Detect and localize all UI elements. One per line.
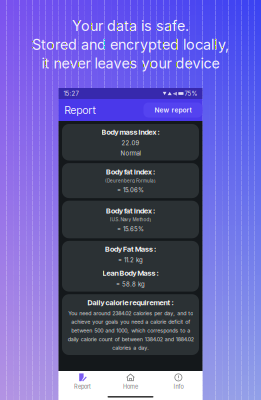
staticText: Home — [123, 383, 138, 390]
staticText: New report — [154, 106, 191, 114]
button[interactable]: Home — [106, 371, 154, 392]
staticText: Body Fat Mass : — [105, 245, 156, 253]
staticText: Body fat index : — [106, 167, 155, 176]
staticText: (U.S. Navy Method) — [109, 217, 151, 222]
staticText: Your data is safe. — [72, 17, 189, 34]
button[interactable]: Report — [58, 99, 143, 120]
staticText: Daily calorie requirement : — [87, 298, 173, 307]
staticText: Report — [74, 383, 91, 390]
button[interactable]: New report — [143, 102, 202, 117]
button[interactable]: Report — [58, 371, 106, 392]
staticText: 75% — [184, 90, 197, 97]
staticText: 22.09 — [121, 139, 139, 147]
staticText: Normal — [120, 150, 140, 157]
staticText: Lean Body Mass : — [102, 269, 158, 278]
staticText: it never leaves your device — [41, 55, 219, 72]
staticText: Report — [64, 103, 95, 116]
button[interactable]: Info — [154, 371, 202, 392]
staticText: = 11.2 kg — [118, 256, 143, 264]
staticText: 15:27 — [63, 90, 78, 97]
staticText: = 15.65% — [117, 225, 144, 233]
staticText: = 15.06% — [117, 186, 144, 194]
staticText: Info — [173, 383, 183, 390]
staticText: Stored and encrypted locally, — [32, 36, 229, 53]
staticText: (Deurenberg Formula) — [105, 178, 156, 184]
staticText: = 58.8 kg — [116, 281, 145, 288]
staticText: Body fat index : — [106, 206, 155, 215]
staticText: Body mass index : — [101, 128, 159, 136]
staticText: You need around 2384.02 calories per day… — [67, 310, 193, 351]
